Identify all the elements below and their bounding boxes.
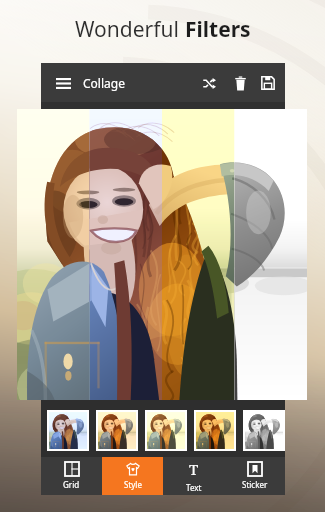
- button[interactable]: Filter 1: [49, 412, 87, 449]
- button[interactable]: [17, 109, 307, 400]
- staticText: Grid: [63, 479, 80, 490]
- button[interactable]: Sticker: [224, 457, 285, 495]
- button[interactable]: Filter 2: [98, 412, 136, 449]
- button[interactable]: Save: [255, 68, 280, 98]
- staticText: T: [189, 459, 199, 479]
- staticText: Sticker: [242, 479, 268, 490]
- staticText: Style: [124, 479, 142, 490]
- button[interactable]: T: [163, 457, 224, 495]
- staticText: Collage: [83, 75, 125, 91]
- button[interactable]: Style: [102, 457, 163, 495]
- button[interactable]: Filter 5: [245, 412, 283, 449]
- staticText: Text: [186, 482, 202, 493]
- staticText: Filters: [185, 15, 251, 44]
- staticText: Wonderful: [75, 15, 185, 44]
- button[interactable]: Shuffle: [195, 68, 225, 98]
- button[interactable]: Grid: [41, 457, 102, 495]
- button[interactable]: Menu: [50, 70, 76, 96]
- button[interactable]: Filter 3: [147, 412, 185, 449]
- button[interactable]: Filter 4: [196, 412, 234, 449]
- button[interactable]: Delete: [225, 68, 255, 98]
